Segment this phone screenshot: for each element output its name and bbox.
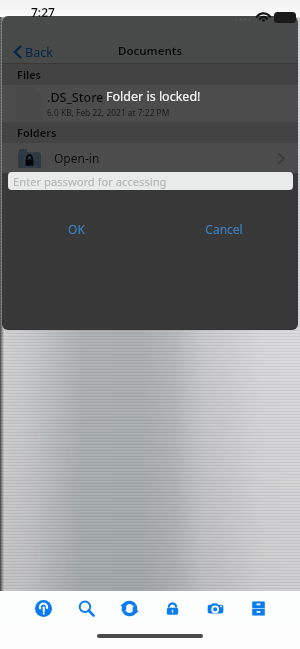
button[interactable]: Search (75, 597, 97, 619)
staticText: Files (17, 67, 42, 82)
staticText: Documents (118, 43, 183, 59)
staticText: Back (25, 44, 53, 61)
button[interactable]: Camera (204, 597, 226, 619)
staticText: Folder is locked! (106, 88, 201, 105)
staticText: Cancel (205, 221, 243, 237)
staticText: Enter password for accessing (13, 174, 167, 189)
button[interactable]: Refresh (118, 597, 140, 619)
staticText: OK (68, 221, 85, 237)
button[interactable]: Lock (161, 597, 183, 619)
button[interactable]: Files (247, 597, 269, 619)
button[interactable]: .DS_Store (2, 85, 298, 122)
staticText: 6.0 KB, Feb 22, 2021 at 7:22 PM (47, 107, 170, 118)
button[interactable]: Back (2, 40, 61, 64)
button[interactable]: Enter password for accessing (8, 172, 293, 190)
button[interactable]: Help (32, 597, 54, 619)
button[interactable]: OK (2, 215, 150, 243)
staticText: Open-in (54, 150, 100, 166)
button[interactable]: Open-in (2, 143, 298, 173)
staticText: .DS_Store (47, 89, 104, 106)
staticText: Folders (17, 125, 57, 140)
staticText: 7:27 (31, 4, 55, 20)
button[interactable]: Cancel (150, 215, 298, 243)
